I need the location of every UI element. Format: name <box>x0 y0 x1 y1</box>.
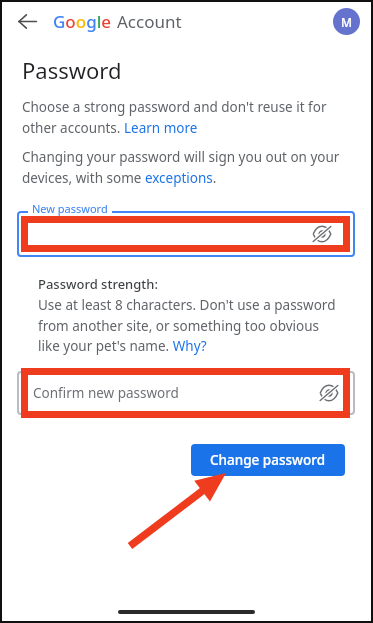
staticText: M <box>341 14 353 30</box>
staticText: Password strength: <box>38 275 158 293</box>
button[interactable]: Back <box>10 4 44 38</box>
staticText: Use at least 8 characters. Don't use a p… <box>38 296 343 355</box>
button[interactable]: Confirm new password <box>17 371 355 415</box>
button[interactable]: Change password <box>191 444 345 476</box>
staticText: Choose a strong password and don't reuse… <box>22 98 346 137</box>
button[interactable]: Google <box>53 10 182 33</box>
button[interactable]: Show password <box>310 222 334 246</box>
button[interactable]: Show confirm password <box>317 381 341 405</box>
staticText: Google <box>53 10 112 33</box>
staticText: New password <box>32 201 108 216</box>
staticText: Confirm new password <box>33 384 179 402</box>
staticText: Password <box>22 55 122 85</box>
button[interactable]: Google Account profile <box>333 8 360 35</box>
staticText: Change password <box>210 451 326 469</box>
staticText: Account <box>117 10 182 33</box>
button[interactable] <box>17 211 355 257</box>
staticText: Changing your password will sign you out… <box>22 148 346 187</box>
